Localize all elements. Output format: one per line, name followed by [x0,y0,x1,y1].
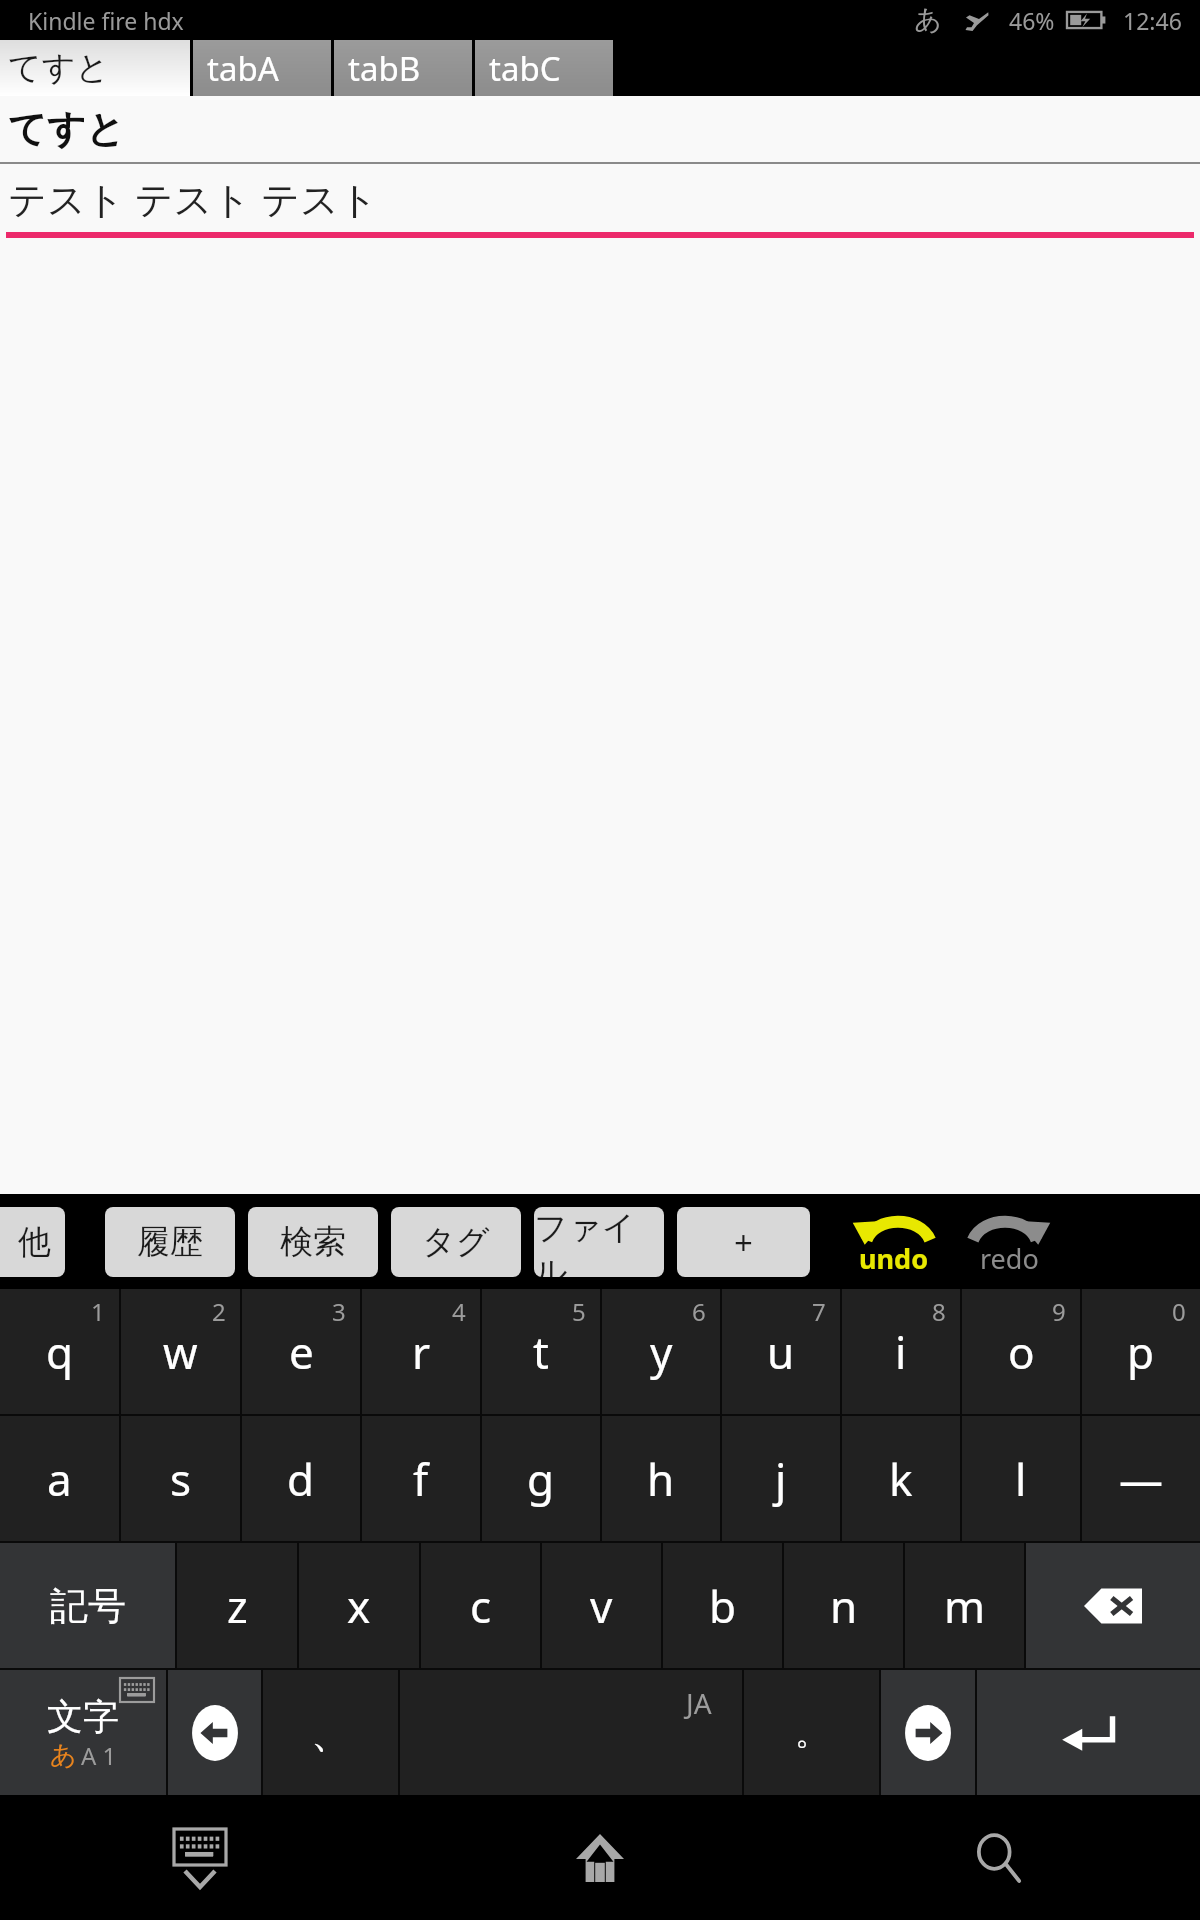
staticText: A 1 [81,1739,117,1772]
staticText: c [470,1576,492,1636]
button[interactable]: 8 [842,1289,960,1414]
button[interactable]: Hide keyboard [0,1795,400,1920]
button[interactable]: a [0,1416,119,1541]
staticText: 2 [212,1295,226,1328]
button[interactable]: 文字 [0,1670,166,1795]
button[interactable]: 2 [121,1289,240,1414]
staticText: d [287,1449,315,1509]
staticText: p [1127,1322,1155,1382]
button[interactable]: 4 [362,1289,480,1414]
staticText: tabB [348,46,421,91]
staticText: 他 [18,1221,51,1263]
button[interactable]: k [842,1416,960,1541]
staticText: t [533,1322,549,1382]
staticText: 12:46 [1123,5,1182,36]
staticText: あ [914,3,942,37]
button[interactable]: 7 [722,1289,840,1414]
button[interactable]: 。 [744,1670,879,1795]
button[interactable]: — [1082,1416,1200,1541]
button[interactable]: 0 [1082,1289,1200,1414]
button[interactable]: j [722,1416,840,1541]
button[interactable]: Cursor left [168,1670,261,1795]
button[interactable]: JA [400,1670,742,1795]
button[interactable]: Cursor right [881,1670,975,1795]
button[interactable]: 5 [482,1289,600,1414]
staticText: タグ [422,1221,490,1263]
staticText: y [650,1322,673,1382]
button[interactable]: 、 [263,1670,398,1795]
button[interactable]: tabB [334,40,472,96]
button[interactable]: m [905,1543,1024,1668]
staticText: k [889,1449,913,1509]
staticText: tabC [489,46,561,91]
staticText: Kindle fire hdx [28,5,184,36]
button[interactable]: tabC [475,40,613,96]
staticText: w [163,1322,198,1382]
button[interactable]: Undo [839,1194,949,1289]
staticText: z [227,1576,248,1636]
staticText: 、 [311,1708,351,1758]
staticText: b [709,1576,737,1636]
button[interactable]: Backspace [1026,1543,1200,1668]
button[interactable]: Redo [949,1194,1069,1289]
button[interactable]: 他 [0,1207,65,1277]
button[interactable]: l [962,1416,1080,1541]
staticText: q [46,1322,74,1382]
staticText: てすと [8,105,125,153]
staticText: 6 [692,1295,706,1328]
staticText: 46% [1009,5,1055,36]
staticText: 1 [91,1295,105,1328]
staticText: 3 [332,1295,346,1328]
staticText: 。 [795,1711,829,1754]
button[interactable]: tabA [193,40,331,96]
button[interactable]: v [542,1543,661,1668]
staticText: undo [859,1240,929,1277]
button[interactable]: 3 [242,1289,360,1414]
button[interactable]: Home [400,1795,800,1920]
button[interactable]: Enter [977,1670,1200,1795]
staticText: 履歴 [137,1221,203,1263]
staticText: JA [686,1684,712,1722]
button[interactable]: h [602,1416,720,1541]
button[interactable]: b [663,1543,782,1668]
button[interactable]: 記号 [0,1543,175,1668]
button[interactable]: てすと [0,40,190,96]
button[interactable]: 履歴 [105,1207,235,1277]
button[interactable]: 6 [602,1289,720,1414]
staticText: 記号 [50,1582,126,1630]
staticText: 7 [812,1295,826,1328]
staticText: テスト テスト テスト [8,172,378,224]
staticText: n [830,1576,858,1636]
button[interactable]: タグ [391,1207,521,1277]
button[interactable]: z [177,1543,297,1668]
button[interactable]: n [784,1543,903,1668]
staticText: m [944,1576,986,1636]
staticText: 検索 [280,1221,346,1263]
button[interactable]: 検索 [248,1207,378,1277]
button[interactable]: s [121,1416,240,1541]
button[interactable]: 1 [0,1289,119,1414]
button[interactable]: d [242,1416,360,1541]
staticText: j [775,1449,787,1509]
staticText: a [47,1449,72,1509]
staticText: 8 [932,1295,946,1328]
staticText: redo [980,1240,1039,1277]
button[interactable]: x [299,1543,419,1668]
staticText: あ [50,1739,77,1772]
button[interactable]: ファイル [534,1207,664,1277]
button[interactable]: f [362,1416,480,1541]
button[interactable]: + [677,1207,810,1277]
staticText: 4 [452,1295,466,1328]
staticText: h [647,1449,675,1509]
staticText: v [590,1576,613,1636]
staticText: ファイル [534,1207,664,1277]
button[interactable]: Search [800,1795,1200,1920]
staticText: 0 [1172,1295,1186,1328]
button[interactable]: c [421,1543,540,1668]
staticText: 文字 [47,1694,119,1739]
staticText: l [1015,1449,1027,1509]
staticText: g [527,1449,555,1509]
button[interactable]: 9 [962,1289,1080,1414]
button[interactable]: g [482,1416,600,1541]
staticText: 9 [1052,1295,1066,1328]
